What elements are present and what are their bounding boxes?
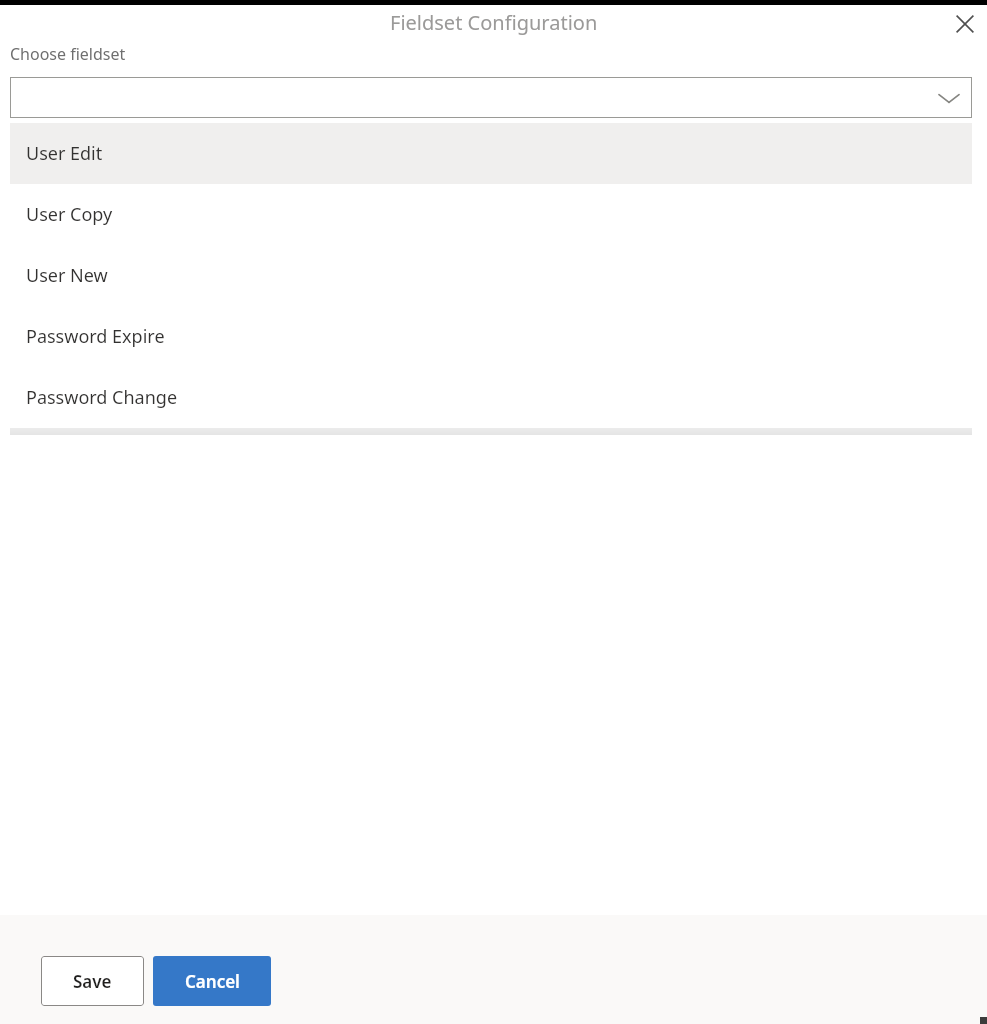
button[interactable]: Save	[41, 956, 144, 1006]
staticText: User New	[26, 263, 108, 288]
button[interactable]: Password Change	[10, 367, 972, 428]
staticText: Password Expire	[26, 324, 165, 349]
staticText: Choose fieldset	[10, 43, 126, 65]
button[interactable]: User New	[10, 245, 972, 306]
button[interactable]: Choose fieldset dropdown	[10, 77, 972, 118]
button[interactable]: User Edit	[10, 123, 972, 184]
staticText: Save	[73, 970, 112, 993]
staticText: Cancel	[185, 970, 240, 993]
button[interactable]: Password Expire	[10, 306, 972, 367]
staticText: Password Change	[26, 385, 178, 410]
staticText: User Copy	[26, 202, 113, 227]
button[interactable]: User Copy	[10, 184, 972, 245]
button[interactable]: Close	[943, 2, 987, 46]
staticText: User Edit	[26, 141, 103, 166]
button[interactable]: Cancel	[153, 956, 271, 1006]
staticText: Fieldset Configuration	[390, 9, 598, 36]
